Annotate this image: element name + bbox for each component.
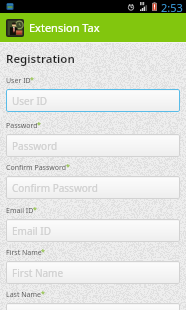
- button[interactable]: Password: [6, 134, 180, 157]
- staticText: First Name: [6, 248, 42, 258]
- staticText: *: [66, 162, 70, 172]
- staticText: User ID: [6, 76, 31, 86]
- staticText: Registration: [6, 51, 75, 67]
- staticText: *: [37, 120, 41, 130]
- staticText: Password: [12, 139, 58, 153]
- staticText: *: [41, 247, 45, 257]
- button[interactable]: Last Name: [6, 303, 180, 310]
- staticText: Email ID: [6, 206, 34, 216]
- staticText: Email ID: [12, 224, 51, 238]
- staticText: Last Name: [6, 290, 42, 300]
- staticText: First Name: [12, 266, 64, 280]
- staticText: User ID: [12, 94, 48, 108]
- other: App icon: [6, 19, 24, 37]
- staticText: Confirm Password: [6, 163, 67, 173]
- staticText: Confirm Password: [12, 181, 98, 195]
- button[interactable]: First Name: [6, 261, 180, 284]
- staticText: Password: [6, 121, 38, 131]
- button[interactable]: Confirm Password: [6, 176, 180, 199]
- button[interactable]: Email ID: [6, 219, 180, 242]
- staticText: Extension Tax: [29, 20, 100, 35]
- button[interactable]: User ID: [6, 89, 180, 112]
- staticText: *: [30, 75, 34, 85]
- staticText: *: [41, 289, 45, 299]
- staticText: *: [33, 205, 37, 215]
- staticText: 2:53: [161, 0, 183, 13]
